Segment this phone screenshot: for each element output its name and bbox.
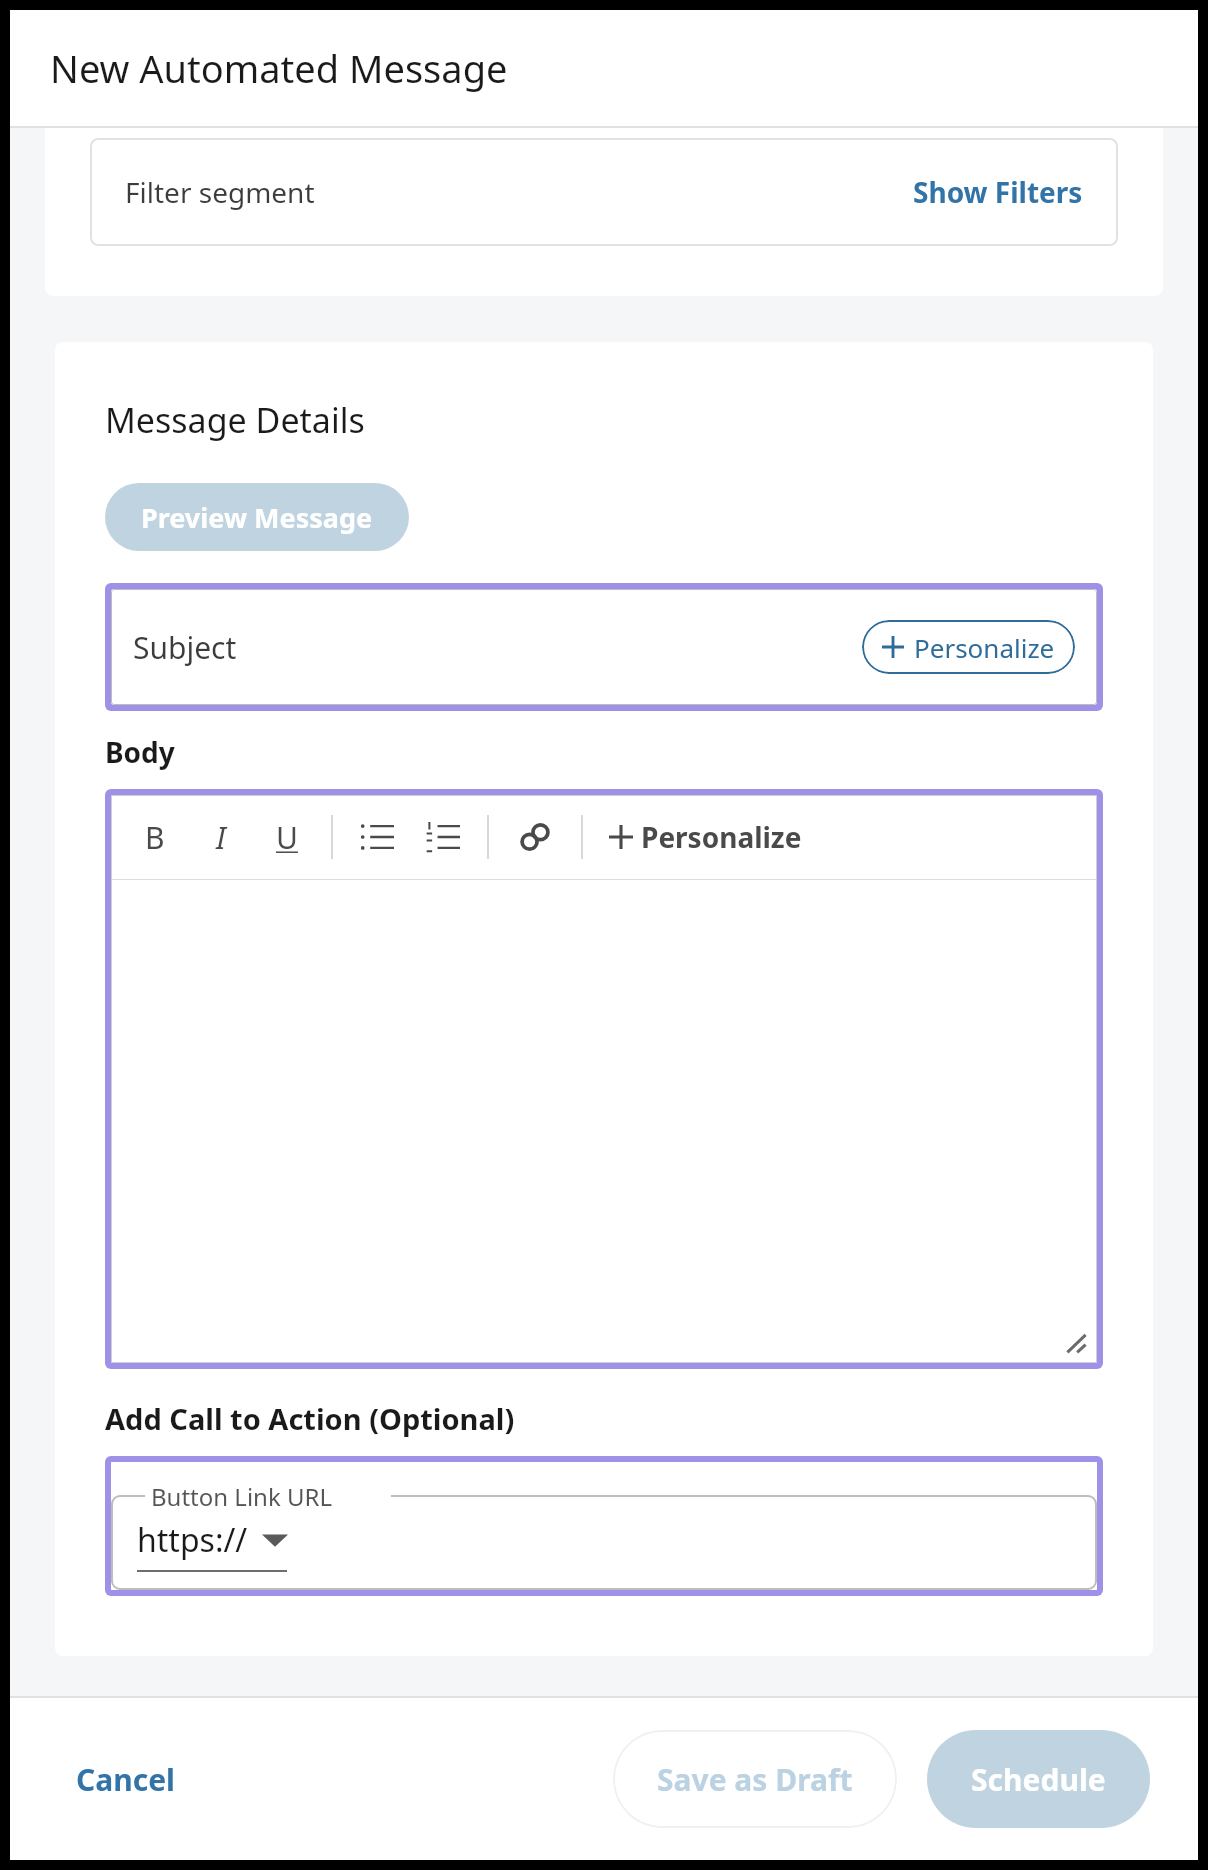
staticText: https:// [137, 1518, 248, 1562]
staticText: Body [105, 733, 175, 771]
staticText: New Automated Message [50, 42, 508, 94]
staticText: Personalize [914, 630, 1055, 665]
button[interactable] [111, 880, 1097, 1363]
staticText: Schedule [971, 1759, 1106, 1800]
button[interactable]: Numbered list [421, 815, 465, 859]
staticText: Save as Draft [657, 1759, 853, 1800]
staticText: Subject [133, 627, 237, 668]
button[interactable]: U [265, 815, 309, 859]
button[interactable]: Button Link URL [111, 1462, 1097, 1590]
staticText: U [276, 817, 298, 858]
staticText: Add Call to Action (Optional) [105, 1399, 515, 1438]
staticText: Preview Message [141, 499, 373, 536]
button[interactable]: Save as Draft [613, 1730, 897, 1828]
staticText: Show Filters [913, 173, 1083, 211]
button[interactable]: I [199, 815, 243, 859]
button[interactable]: Schedule [927, 1730, 1150, 1828]
button[interactable]: Filter segment [90, 138, 1118, 246]
button[interactable]: Personalize [862, 620, 1075, 674]
staticText: Personalize [641, 818, 802, 856]
button[interactable]: Cancel [58, 1745, 194, 1814]
button[interactable]: Personalize [609, 818, 802, 856]
staticText: I [216, 817, 226, 858]
button[interactable]: Preview Message [105, 483, 409, 551]
staticText: B [145, 817, 165, 858]
button[interactable]: Bulleted list [355, 815, 399, 859]
button[interactable]: Insert link [511, 813, 559, 861]
staticText: Cancel [76, 1759, 176, 1800]
staticText: Button Link URL [151, 1480, 333, 1513]
button[interactable]: Subject [111, 589, 1097, 705]
button[interactable]: B [133, 815, 177, 859]
staticText: Message Details [105, 397, 365, 443]
staticText: Filter segment [125, 173, 315, 211]
